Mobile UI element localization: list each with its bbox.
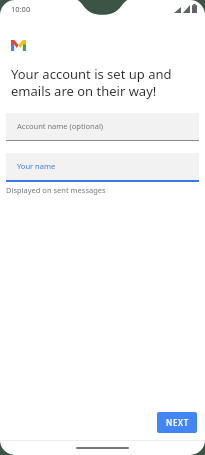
- staticText: Your account is set up and emails are on…: [11, 65, 194, 100]
- button[interactable]: Your name: [6, 153, 199, 182]
- button[interactable]: Account name (optional): [6, 113, 199, 141]
- staticText: Account name (optional): [17, 121, 104, 131]
- staticText: NEXT: [166, 417, 189, 428]
- staticText: 10:00: [11, 4, 31, 14]
- staticText: Displayed on sent messages: [6, 185, 106, 195]
- staticText: Your name: [17, 161, 56, 171]
- button[interactable]: NEXT: [157, 412, 197, 433]
